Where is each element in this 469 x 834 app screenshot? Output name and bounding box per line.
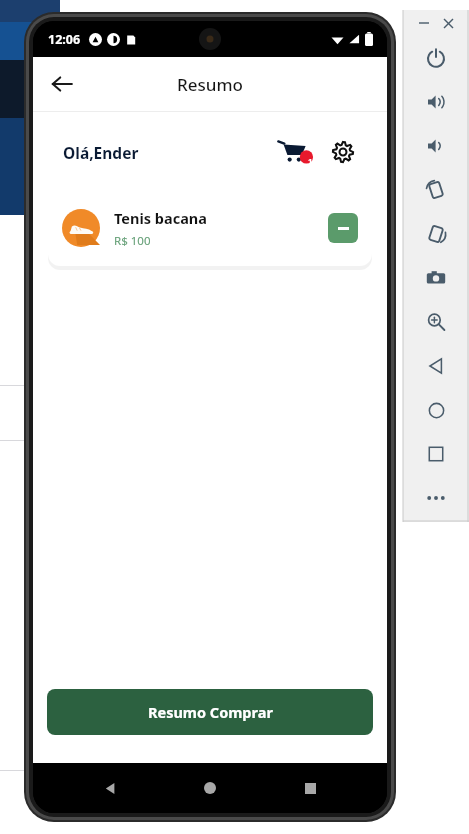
button[interactable]: Back — [403, 344, 469, 388]
button[interactable]: Overview — [403, 432, 469, 476]
button[interactable]: Home — [193, 771, 227, 805]
staticText: Resumo — [177, 73, 243, 96]
button[interactable]: Resumo Comprar — [47, 689, 373, 735]
button[interactable]: Home — [403, 388, 469, 432]
button[interactable]: Tenis bacana — [48, 190, 372, 266]
button[interactable]: Cart, 1 item — [273, 130, 317, 174]
button[interactable]: More — [403, 476, 469, 520]
button[interactable]: Rotate left — [403, 168, 469, 212]
button[interactable]: Settings — [323, 132, 363, 172]
button[interactable]: Remove one — [328, 213, 358, 243]
staticText: Tenis bacana — [114, 208, 207, 228]
button[interactable]: Power — [403, 36, 469, 80]
button[interactable]: Close — [438, 13, 458, 33]
button[interactable]: Rotate right — [403, 212, 469, 256]
staticText: Olá,Ender — [63, 142, 139, 163]
staticText: Resumo Comprar — [148, 702, 273, 722]
button[interactable]: Back — [41, 63, 83, 105]
button[interactable]: Recents — [293, 771, 327, 805]
button[interactable]: Minimize — [414, 13, 434, 33]
button[interactable]: Screenshot — [403, 256, 469, 300]
button[interactable]: Zoom — [403, 300, 469, 344]
staticText: 1 — [308, 156, 313, 166]
staticText: 12:06 — [48, 31, 81, 48]
button[interactable]: Back — [93, 771, 127, 805]
button[interactable]: Volume down — [403, 124, 469, 168]
staticText: R$ 100 — [114, 233, 151, 249]
button[interactable]: Volume up — [403, 80, 469, 124]
